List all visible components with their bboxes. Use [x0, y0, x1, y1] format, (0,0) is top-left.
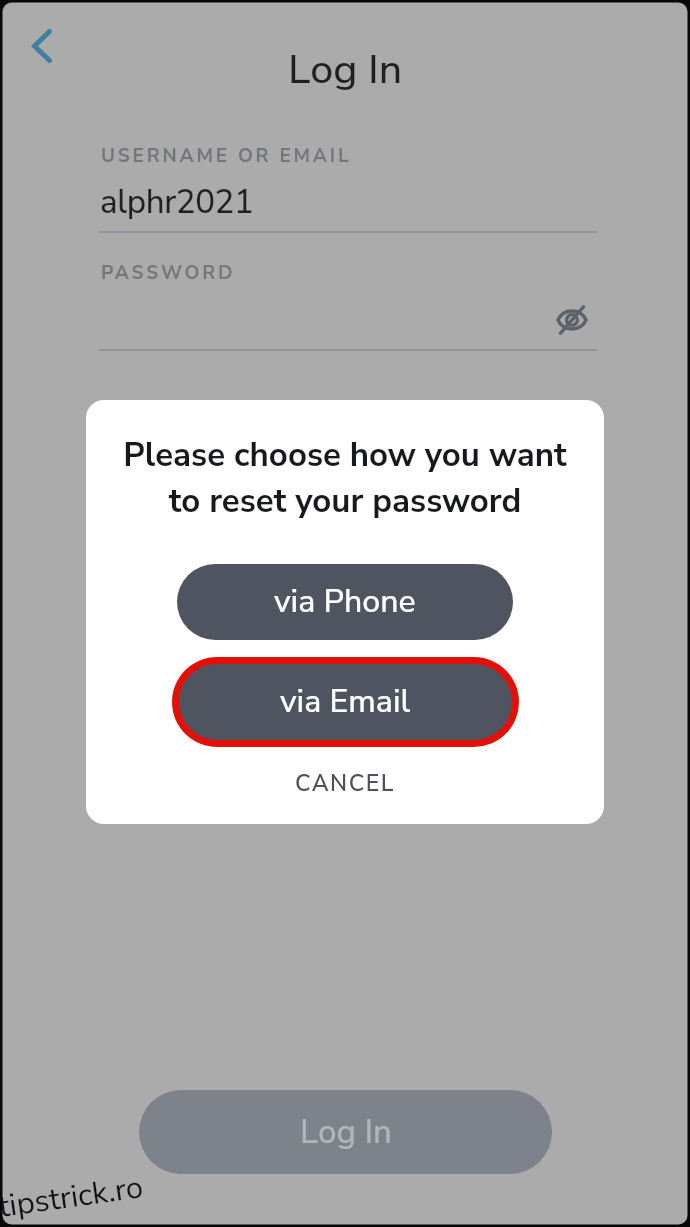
- button[interactable]: Back: [13, 17, 71, 75]
- staticText: USERNAME OR EMAIL: [101, 143, 352, 169]
- staticText: Log In: [300, 1110, 392, 1155]
- staticText: alphr2021: [100, 180, 254, 225]
- staticText: via Phone: [274, 580, 416, 624]
- staticText: Please choose how you want to reset your…: [115, 433, 575, 524]
- button[interactable]: Show password: [550, 298, 594, 342]
- staticText: CANCEL: [295, 768, 395, 799]
- button[interactable]: Log In: [139, 1090, 552, 1174]
- staticText: PASSWORD: [101, 260, 236, 286]
- staticText: via Email: [280, 680, 411, 724]
- button[interactable]: via Email: [172, 657, 519, 747]
- button[interactable]: via Phone: [177, 564, 513, 640]
- button[interactable]: CANCEL: [269, 760, 421, 807]
- staticText: tipstrick.ro: [0, 1166, 146, 1227]
- staticText: Log In: [288, 42, 403, 98]
